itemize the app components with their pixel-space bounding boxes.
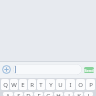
button[interactable]: A	[3, 92, 13, 96]
button[interactable]: J	[64, 92, 73, 96]
staticText: G	[46, 92, 51, 96]
staticText: K	[77, 92, 81, 96]
button[interactable]: D	[24, 92, 33, 96]
button[interactable]: F	[34, 92, 43, 96]
button[interactable]: T	[37, 79, 45, 90]
button[interactable]: E	[19, 79, 27, 90]
staticText: J	[68, 92, 70, 96]
button[interactable]: S	[14, 92, 23, 96]
button[interactable]: W	[10, 79, 18, 90]
button[interactable]: H	[54, 92, 63, 96]
staticText: D	[26, 92, 31, 96]
staticText: R	[30, 81, 34, 89]
button[interactable]: K	[74, 92, 83, 96]
staticText: Y	[49, 81, 53, 89]
button[interactable]: R	[28, 79, 36, 90]
button[interactable]: Add attachment	[2, 65, 11, 74]
staticText: A	[6, 92, 10, 96]
staticText: T	[39, 81, 43, 89]
staticText: F	[37, 92, 41, 96]
staticText: H	[56, 92, 61, 96]
button[interactable]: L	[84, 92, 93, 96]
button[interactable]	[13, 64, 82, 75]
button[interactable]: P	[86, 79, 95, 90]
staticText: Send	[84, 68, 94, 73]
staticText: U	[58, 81, 63, 89]
staticText: I	[69, 81, 72, 89]
button[interactable]: Q	[1, 79, 9, 90]
staticText: E	[21, 81, 25, 89]
button[interactable]: U	[56, 79, 65, 90]
staticText: L	[87, 92, 91, 96]
button[interactable]: Send	[84, 67, 94, 73]
staticText: O	[78, 81, 83, 89]
staticText: S	[17, 92, 21, 96]
staticText: Q	[3, 81, 8, 89]
button[interactable]: Y	[46, 79, 55, 90]
button[interactable]: I	[66, 79, 75, 90]
button[interactable]: O	[76, 79, 85, 90]
staticText: P	[89, 81, 93, 89]
button[interactable]: G	[44, 92, 53, 96]
staticText: W	[11, 81, 17, 89]
